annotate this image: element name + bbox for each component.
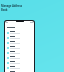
button[interactable] <box>5 40 34 45</box>
button[interactable] <box>5 65 34 70</box>
button[interactable] <box>5 50 34 55</box>
button[interactable] <box>5 70 34 72</box>
button[interactable] <box>5 30 34 35</box>
button[interactable] <box>5 55 34 60</box>
staticText: Manage Address Book <box>1 4 23 12</box>
button[interactable] <box>5 35 34 40</box>
button[interactable] <box>5 60 34 65</box>
button[interactable] <box>5 45 34 50</box>
